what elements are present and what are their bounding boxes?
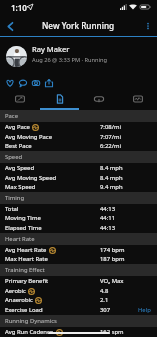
staticText: Training Effect xyxy=(5,266,45,274)
staticText: 6:22/mi xyxy=(100,142,121,150)
staticText: Avg Pace xyxy=(5,123,30,131)
staticText: Aerobic xyxy=(5,287,26,295)
button[interactable]: Avg Speed xyxy=(0,163,157,173)
staticText: 44:13 xyxy=(100,205,116,213)
staticText: Pace xyxy=(5,112,19,120)
staticText: Max Speed xyxy=(5,183,36,191)
button[interactable]: Share xyxy=(42,74,55,91)
staticText: 9.4 mph xyxy=(100,183,123,191)
button[interactable]: Exercise Load xyxy=(0,305,157,315)
button[interactable]: Avg Moving Pace xyxy=(0,132,157,142)
button[interactable]: Avg Moving Speed xyxy=(0,173,157,183)
staticText: 8.4 mph xyxy=(100,164,123,172)
button[interactable]: Map xyxy=(0,89,40,110)
button[interactable]: Stats xyxy=(40,89,79,110)
staticText: 162 spm xyxy=(100,328,124,336)
staticText: Avg Heart Rate xyxy=(5,246,47,254)
staticText: Running Dynamics xyxy=(5,317,57,325)
button[interactable]: Primary Benefit xyxy=(0,276,157,286)
button[interactable]: Avg Heart Rate xyxy=(0,245,157,255)
staticText: Avg Moving Pace xyxy=(5,133,53,141)
staticText: Exercise Load xyxy=(5,306,43,314)
button[interactable]: Moving Time xyxy=(0,213,157,223)
staticText: Heart Rate xyxy=(5,235,35,243)
staticText: 1:10 xyxy=(11,2,27,13)
button[interactable]: Aerobic xyxy=(0,286,157,296)
button[interactable]: Total xyxy=(0,204,157,214)
staticText: 307 xyxy=(100,306,111,314)
staticText: 174 bpm xyxy=(100,246,125,254)
staticText: 7:07/mi xyxy=(100,133,121,141)
staticText: 187 bpm xyxy=(100,255,125,263)
button[interactable]: Avg Run Cadence xyxy=(0,327,157,337)
button[interactable]: Back xyxy=(0,16,20,36)
button[interactable]: Laps xyxy=(79,89,118,110)
button[interactable]: More options xyxy=(139,14,157,37)
staticText: Ray Maker xyxy=(32,44,70,54)
staticText: Help xyxy=(138,306,151,314)
button[interactable]: Avg Pace xyxy=(0,122,157,132)
button[interactable]: Best Pace xyxy=(0,141,157,151)
staticText: Speed xyxy=(5,153,23,161)
staticText: 7:08/mi xyxy=(100,123,121,131)
button[interactable]: Max Heart Rate xyxy=(0,254,157,264)
staticText: Total xyxy=(5,205,19,213)
staticText: Timing xyxy=(5,194,25,202)
button[interactable]: Elapsed Time xyxy=(0,223,157,233)
staticText: 4.8 xyxy=(100,287,109,295)
button[interactable]: Like xyxy=(3,74,16,91)
button[interactable]: Graphs xyxy=(118,89,157,110)
button[interactable]: Comment xyxy=(16,74,29,91)
staticText: Anaerobic xyxy=(5,296,33,304)
staticText: Max Heart Rate xyxy=(5,255,48,263)
staticText: 44:11 xyxy=(100,214,116,222)
staticText: Best Pace xyxy=(5,142,32,150)
staticText: Avg Speed xyxy=(5,164,35,172)
staticText: Primary Benefit xyxy=(5,277,49,285)
staticText: New York Running xyxy=(42,20,115,31)
staticText: 2.1 xyxy=(100,296,109,304)
staticText: Elapsed Time xyxy=(5,224,42,232)
staticText: Avg Moving Speed xyxy=(5,174,57,182)
staticText: Avg Run Cadence xyxy=(5,328,54,336)
button[interactable]: Max Speed xyxy=(0,182,157,192)
staticText: VO₂ Max xyxy=(100,277,124,285)
staticText: Aug 26 @ 3:33 PM · Running xyxy=(32,56,108,64)
button[interactable]: Anaerobic xyxy=(0,295,157,305)
button[interactable]: Photo xyxy=(29,74,42,91)
staticText: 44:13 xyxy=(100,224,116,232)
staticText: 8.4 mph xyxy=(100,174,123,182)
staticText: Moving Time xyxy=(5,214,41,222)
